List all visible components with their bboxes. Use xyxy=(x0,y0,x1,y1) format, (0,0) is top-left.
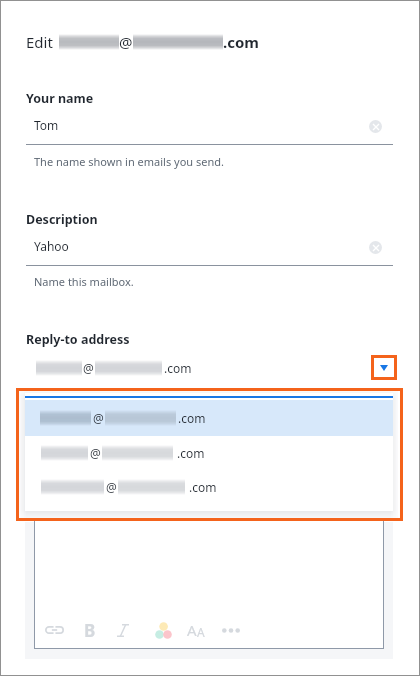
staticText: A xyxy=(187,620,197,640)
staticText: A xyxy=(197,624,205,640)
button[interactable]: Bold xyxy=(77,617,103,643)
staticText: .com xyxy=(177,445,205,461)
button[interactable]: Insert link xyxy=(41,617,68,643)
staticText: @ xyxy=(83,360,94,376)
button[interactable]: Show reply-to address options xyxy=(371,355,397,380)
staticText: Reply-to address xyxy=(26,331,130,348)
button[interactable]: @ xyxy=(25,400,393,436)
staticText: Yahoo xyxy=(34,238,69,254)
staticText: @ xyxy=(119,32,133,52)
staticText: @ xyxy=(90,445,101,461)
staticText: Description xyxy=(26,211,98,228)
button[interactable]: Clear xyxy=(365,116,385,136)
button[interactable]: @ xyxy=(25,436,393,470)
button[interactable]: Italic xyxy=(110,617,136,643)
staticText: @ xyxy=(93,410,104,426)
staticText: B xyxy=(84,619,96,642)
staticText: Name this mailbox. xyxy=(34,274,134,289)
staticText: Edit xyxy=(26,32,53,52)
staticText: @ xyxy=(106,479,117,495)
button[interactable]: @ xyxy=(25,470,393,504)
staticText: Tom xyxy=(34,117,59,133)
staticText: Your name xyxy=(26,90,94,107)
staticText: .com xyxy=(178,410,206,426)
staticText: .com xyxy=(164,360,192,376)
button[interactable]: Clear xyxy=(365,237,385,257)
button[interactable]: More options xyxy=(218,617,244,643)
button[interactable]: Font size xyxy=(182,617,209,643)
button[interactable]: Text color xyxy=(148,617,174,643)
staticText: The name shown in emails you send. xyxy=(34,154,224,169)
staticText: .com xyxy=(189,479,217,495)
staticText: .com xyxy=(223,32,259,52)
